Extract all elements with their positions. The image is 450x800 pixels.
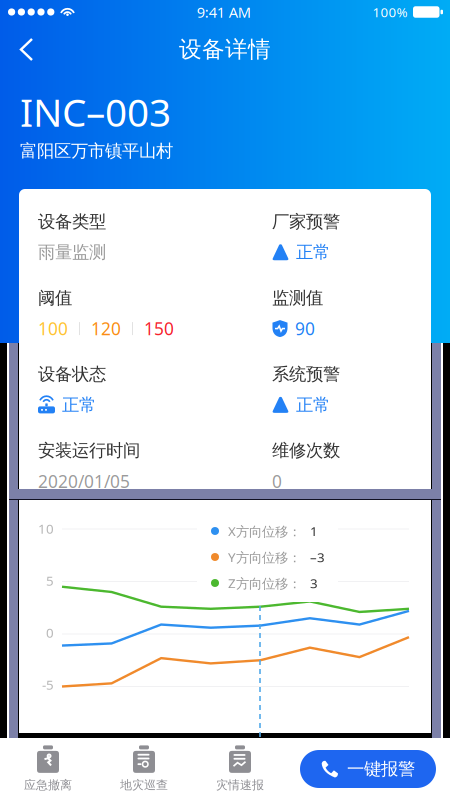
staticText: 应急撤离 [24,778,72,792]
staticText: 灾情速报 [216,778,264,792]
staticText: INC–003 [20,86,171,137]
staticText: -5 [42,676,54,693]
staticText: 雨量监测 [38,242,106,263]
button[interactable]: 灾情速报 [192,738,288,800]
staticText: 系统预警 [272,364,340,385]
staticText: 正常 [296,394,330,415]
staticText: 100 [38,317,68,340]
staticText: 设备类型 [38,211,106,232]
button[interactable]: Back [0,27,48,72]
staticText: 正常 [62,394,96,415]
staticText: 2020/01/05 [38,470,130,493]
staticText: Z方向位移： [228,574,301,592]
staticText: 150 [144,317,174,340]
staticText: 正常 [296,242,330,263]
staticText: 设备状态 [38,364,106,385]
staticText: 3 [310,574,318,592]
staticText: 10 [38,520,54,537]
staticText: 5 [46,572,54,589]
staticText: 9:41 AM [197,2,251,22]
staticText: –3 [310,548,325,566]
staticText: 设备详情 [179,36,271,63]
button[interactable]: 地灾巡查 [96,738,192,800]
staticText: 富阳区万市镇平山村 [20,140,173,162]
staticText: 100% [372,3,407,21]
staticText: 120 [91,317,121,340]
staticText: X方向位移： [228,522,301,540]
staticText: 1 [310,522,318,540]
staticText: 一键报警 [347,758,415,780]
staticText: 厂家预警 [272,211,340,232]
button[interactable]: 应急撤离 [0,738,96,800]
staticText: 安装运行时间 [38,440,140,461]
staticText: 0 [46,624,54,641]
staticText: 阈值 [38,287,72,309]
staticText: Y方向位移： [228,548,301,566]
staticText: 90 [295,317,315,340]
button[interactable]: 一键报警 [300,750,436,788]
staticText: 地灾巡查 [120,778,168,792]
staticText: 维修次数 [272,440,340,461]
staticText: 监测值 [272,287,323,309]
staticText: 0 [272,470,282,493]
